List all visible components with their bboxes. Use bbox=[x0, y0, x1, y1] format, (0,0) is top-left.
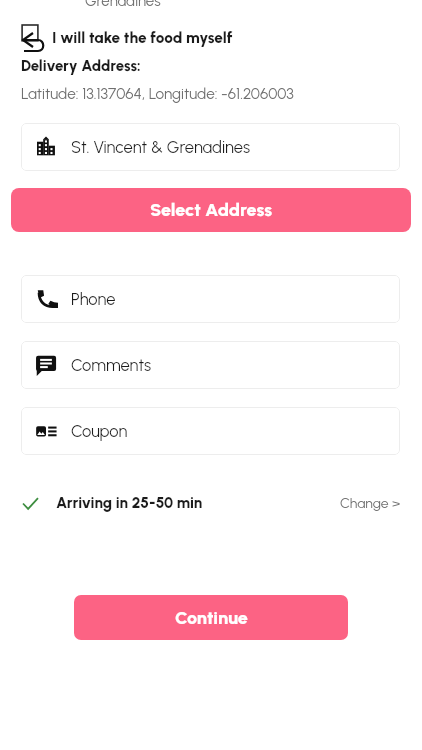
staticText: Delivery Address: bbox=[21, 57, 141, 75]
staticText: I will take the food myself bbox=[52, 28, 233, 46]
staticText: Continue bbox=[175, 607, 248, 629]
staticText: Select Address bbox=[150, 199, 273, 221]
staticText: Grenadines bbox=[85, 0, 161, 10]
staticText: Coupon bbox=[71, 421, 128, 441]
button[interactable]: Phone bbox=[21, 275, 400, 323]
button[interactable]: Select Address bbox=[11, 188, 411, 232]
button[interactable]: Continue bbox=[74, 595, 348, 640]
staticText: St. Vincent & Grenadines bbox=[71, 137, 250, 157]
button[interactable]: Coupon bbox=[21, 407, 400, 455]
button[interactable]: Comments bbox=[21, 341, 400, 389]
button[interactable]: Take the food myself bbox=[0, 21, 422, 53]
staticText: Change > bbox=[340, 495, 401, 512]
staticText: Comments bbox=[71, 355, 152, 375]
button[interactable]: St. Vincent & Grenadines bbox=[21, 123, 400, 171]
staticText: Phone bbox=[71, 289, 116, 309]
staticText: Arriving in 25-50 min bbox=[56, 494, 203, 512]
button[interactable]: Change > bbox=[340, 495, 401, 512]
other: Take the food myself bbox=[21, 22, 44, 52]
staticText: Latitude: 13.137064, Longitude: -61.2060… bbox=[21, 84, 294, 102]
